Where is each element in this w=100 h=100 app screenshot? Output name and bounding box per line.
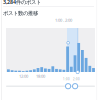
staticText: ポスト数の推移	[3, 10, 38, 17]
staticText: 12:00	[19, 73, 28, 79]
staticText: 18:00	[36, 73, 45, 79]
button[interactable]: Range start	[65, 84, 71, 89]
staticText: 3,284件のポスト	[3, 0, 41, 6]
staticText: 1:00	[63, 77, 70, 81]
staticText: 2:00	[73, 77, 80, 81]
staticText: 1:00 - 2:00	[55, 17, 72, 23]
button[interactable]: Range end	[72, 84, 78, 89]
